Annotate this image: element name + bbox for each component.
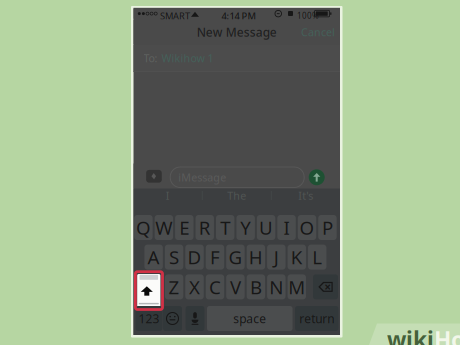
staticText: × <box>324 279 331 295</box>
button[interactable]: N <box>267 274 285 299</box>
button[interactable]: Emoji keyboard <box>163 306 182 331</box>
staticText: 100% <box>297 10 319 21</box>
staticText: How <box>434 324 460 345</box>
staticText: C <box>209 274 221 299</box>
staticText: M <box>288 274 305 299</box>
button[interactable]: Dictate <box>185 306 204 331</box>
button[interactable]: Send <box>309 169 325 185</box>
button[interactable]: C <box>206 274 224 299</box>
staticText: The <box>227 188 246 203</box>
staticText: B <box>250 274 262 299</box>
staticText: To: <box>143 51 157 65</box>
button[interactable]: B <box>247 274 265 299</box>
button[interactable]: F <box>206 245 224 270</box>
staticText: G <box>228 245 242 269</box>
button[interactable]: 123 <box>135 306 162 331</box>
staticText: New Message <box>197 24 277 40</box>
button[interactable]: The <box>203 188 271 202</box>
button[interactable]: V <box>226 274 245 299</box>
staticText: T <box>220 215 230 240</box>
button[interactable]: R <box>195 215 214 240</box>
button[interactable]: D <box>185 245 204 270</box>
staticText: SMART <box>160 10 190 22</box>
button[interactable]: M <box>288 274 306 299</box>
staticText: O <box>299 215 314 240</box>
staticText: 4:14 PM <box>221 10 256 22</box>
staticText: 123 <box>138 310 159 326</box>
button[interactable]: G <box>226 245 245 270</box>
staticText: return <box>299 310 334 326</box>
staticText: N <box>269 274 283 299</box>
staticText: Wikihow 1 <box>161 51 213 65</box>
staticText: E <box>179 215 189 240</box>
staticText: Z <box>169 274 180 299</box>
staticText: iMessage <box>178 170 226 184</box>
button[interactable]: A <box>144 245 163 270</box>
staticText: Cancel <box>301 25 335 39</box>
button[interactable]: It's <box>272 188 340 202</box>
button[interactable]: O <box>298 215 316 240</box>
button[interactable]: H <box>247 245 265 270</box>
staticText: wiki <box>387 324 434 345</box>
staticText: It's <box>298 188 313 203</box>
staticText: I <box>284 215 290 240</box>
button[interactable]: Q <box>134 215 153 240</box>
staticText: A <box>148 245 160 269</box>
button[interactable]: K <box>288 245 306 270</box>
staticText: W <box>155 215 172 240</box>
button[interactable]: W <box>155 215 173 240</box>
button[interactable]: Cancel <box>297 20 339 44</box>
staticText: S <box>169 245 179 269</box>
button[interactable]: I <box>277 215 296 240</box>
button[interactable]: E <box>175 215 193 240</box>
button[interactable]: P <box>318 215 337 240</box>
staticText: V <box>230 274 241 299</box>
button[interactable]: L <box>308 245 326 270</box>
staticText: D <box>187 245 201 269</box>
staticText: I <box>166 188 170 203</box>
button[interactable]: space <box>207 306 292 331</box>
staticText: L <box>312 245 322 269</box>
staticText: Y <box>240 215 251 240</box>
button[interactable]: return <box>295 306 338 331</box>
staticText: K <box>291 245 303 269</box>
button[interactable]: X <box>185 274 204 299</box>
button[interactable]: Shift <box>137 274 160 307</box>
button[interactable]: S <box>165 245 183 270</box>
staticText: U <box>259 215 273 240</box>
button[interactable]: U <box>257 215 275 240</box>
staticText: Q <box>136 215 151 240</box>
button[interactable]: T <box>216 215 234 240</box>
button[interactable]: Camera <box>146 170 162 183</box>
staticText: J <box>274 245 279 269</box>
button[interactable]: Z <box>165 274 183 299</box>
staticText: H <box>249 245 263 269</box>
staticText: P <box>322 215 333 240</box>
button[interactable]: Y <box>236 215 255 240</box>
button[interactable]: J <box>267 245 285 270</box>
staticText: R <box>199 215 211 240</box>
staticText: F <box>210 245 220 269</box>
button[interactable]: Delete <box>313 274 338 299</box>
staticText: space <box>233 310 266 326</box>
staticText: X <box>189 274 200 299</box>
